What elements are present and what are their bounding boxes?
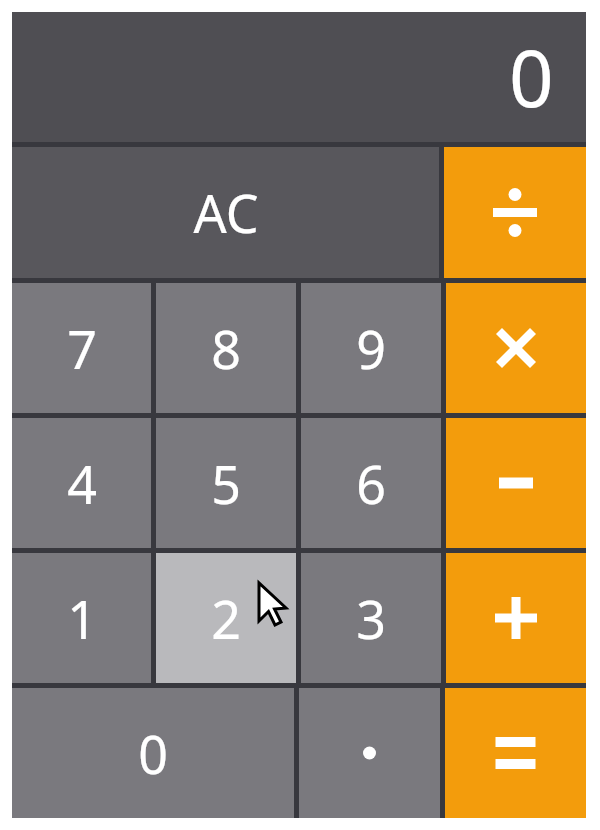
staticText: 1 [67, 583, 97, 654]
staticText: 2 [211, 583, 241, 654]
button[interactable]: 3 [301, 553, 441, 683]
button[interactable]: Add [446, 553, 586, 683]
button[interactable]: Decimal point [299, 688, 440, 818]
staticText: AC [193, 177, 259, 248]
button[interactable]: 7 [12, 283, 151, 413]
staticText: 3 [356, 583, 386, 654]
staticText: 4 [67, 448, 97, 519]
button[interactable]: Equals [445, 688, 586, 818]
staticText: 0 [138, 718, 168, 789]
staticText: 8 [211, 313, 241, 384]
button[interactable]: 4 [12, 418, 151, 548]
button[interactable]: Multiply [446, 283, 586, 413]
button[interactable]: 8 [156, 283, 296, 413]
button[interactable]: AC [12, 147, 439, 278]
staticText: 7 [67, 313, 97, 384]
button[interactable]: 9 [301, 283, 441, 413]
button[interactable]: 1 [12, 553, 151, 683]
button[interactable]: 5 [156, 418, 296, 548]
button[interactable]: 2 [156, 553, 296, 683]
staticText: 6 [356, 448, 386, 519]
staticText: 0 [509, 24, 554, 130]
button[interactable]: 6 [301, 418, 441, 548]
button[interactable]: 0 [12, 688, 294, 818]
button[interactable]: Divide [444, 147, 586, 278]
staticText: 9 [356, 313, 386, 384]
staticText: 5 [211, 448, 241, 519]
button[interactable]: Subtract [446, 418, 586, 548]
